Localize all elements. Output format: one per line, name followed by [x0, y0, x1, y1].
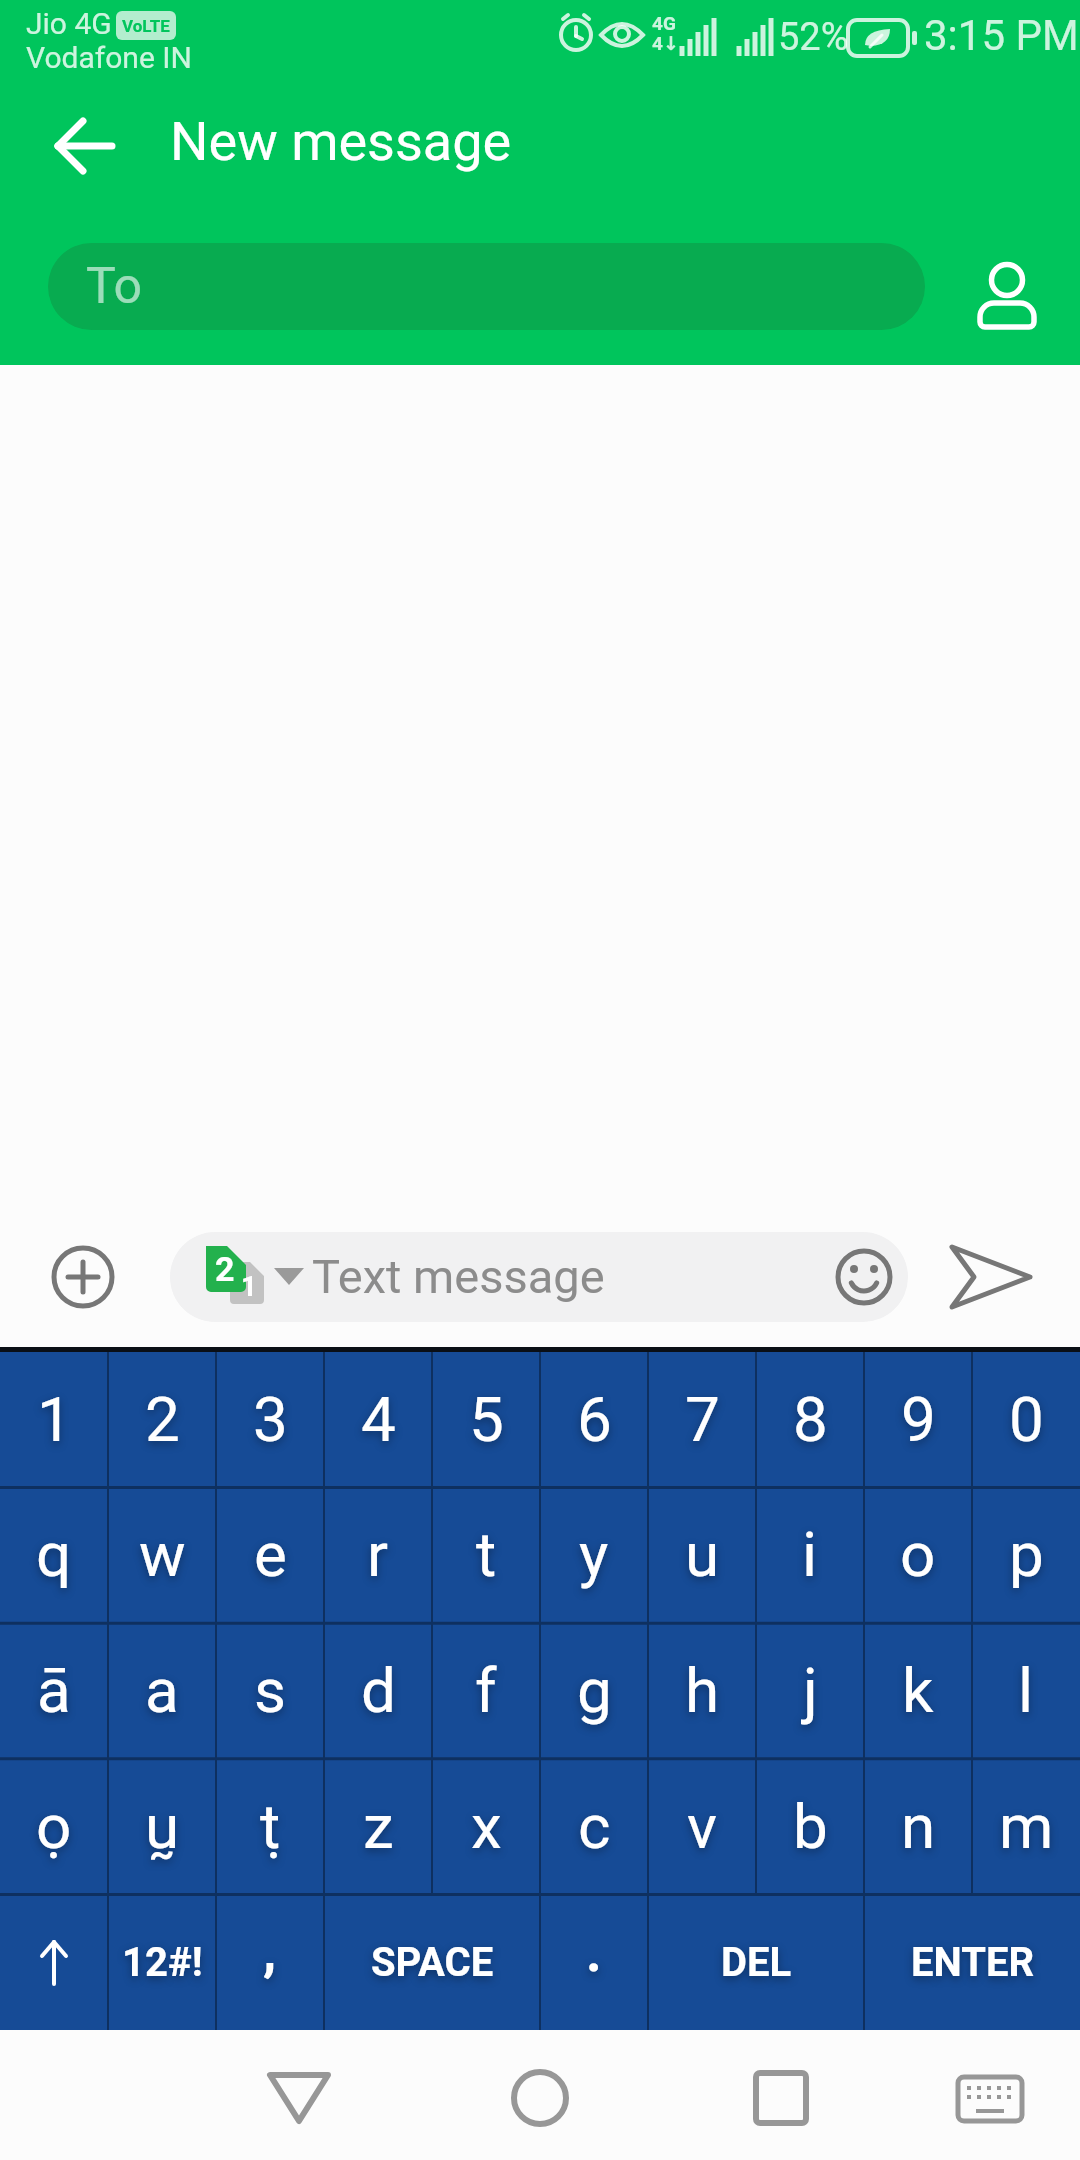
- button[interactable]: To: [48, 243, 925, 330]
- button[interactable]: 8: [756, 1352, 864, 1487]
- button[interactable]: [744, 2061, 818, 2135]
- staticText: 12#!: [122, 1939, 203, 1986]
- staticText: o: [900, 1518, 936, 1591]
- button[interactable]: b: [756, 1758, 864, 1894]
- button[interactable]: e: [216, 1487, 324, 1622]
- button[interactable]: 0: [972, 1352, 1080, 1487]
- staticText: To: [86, 257, 142, 316]
- staticText: Text message: [312, 1249, 605, 1304]
- button[interactable]: 6: [540, 1352, 648, 1487]
- staticText: ,: [263, 1919, 277, 1982]
- button[interactable]: [940, 1236, 1044, 1318]
- staticText: p: [1009, 1518, 1044, 1591]
- button[interactable]: ā: [0, 1622, 108, 1758]
- button[interactable]: SPACE: [324, 1894, 540, 2030]
- staticText: e: [254, 1518, 287, 1591]
- button[interactable]: r: [324, 1487, 432, 1622]
- button[interactable]: [0, 1894, 108, 2030]
- staticText: 0: [1009, 1383, 1044, 1456]
- button[interactable]: y: [540, 1487, 648, 1622]
- button[interactable]: a: [108, 1622, 216, 1758]
- button[interactable]: g: [540, 1622, 648, 1758]
- button[interactable]: n: [864, 1758, 972, 1894]
- staticText: ṵ: [145, 1790, 180, 1863]
- staticText: v: [687, 1790, 718, 1863]
- staticText: l: [1018, 1654, 1034, 1727]
- button[interactable]: t: [432, 1487, 540, 1622]
- button[interactable]: 5: [432, 1352, 540, 1487]
- button[interactable]: 2: [108, 1352, 216, 1487]
- staticText: ṭ: [260, 1790, 281, 1863]
- staticText: h: [685, 1654, 720, 1727]
- staticText: g: [577, 1654, 612, 1727]
- button[interactable]: j: [756, 1622, 864, 1758]
- staticText: 1: [37, 1383, 72, 1456]
- button[interactable]: [262, 2061, 336, 2135]
- button[interactable]: v: [648, 1758, 756, 1894]
- button[interactable]: m: [972, 1758, 1080, 1894]
- button[interactable]: 2: [170, 1232, 908, 1322]
- staticText: a: [145, 1654, 179, 1727]
- button[interactable]: [952, 2061, 1028, 2135]
- staticText: z: [363, 1790, 394, 1863]
- button[interactable]: c: [540, 1758, 648, 1894]
- button[interactable]: ṭ: [216, 1758, 324, 1894]
- button[interactable]: [968, 245, 1048, 329]
- staticText: b: [793, 1790, 828, 1863]
- button[interactable]: f: [432, 1622, 540, 1758]
- staticText: c: [578, 1790, 611, 1863]
- staticText: m: [999, 1790, 1054, 1863]
- staticText: Vodafone IN: [26, 40, 192, 75]
- button[interactable]: 7: [648, 1352, 756, 1487]
- button[interactable]: 1: [0, 1352, 108, 1487]
- button[interactable]: 9: [864, 1352, 972, 1487]
- button[interactable]: w: [108, 1487, 216, 1622]
- staticText: ENTER: [911, 1939, 1034, 1986]
- staticText: 52%: [778, 15, 849, 60]
- button[interactable]: l: [972, 1622, 1080, 1758]
- staticText: 4↓: [652, 32, 679, 54]
- button[interactable]: q: [0, 1487, 108, 1622]
- button[interactable]: s: [216, 1622, 324, 1758]
- button[interactable]: DEL: [648, 1894, 864, 2030]
- button[interactable]: k: [864, 1622, 972, 1758]
- button[interactable]: ṵ: [108, 1758, 216, 1894]
- staticText: y: [579, 1518, 609, 1591]
- staticText: VoLTE: [122, 16, 170, 36]
- staticText: k: [902, 1654, 934, 1727]
- staticText: 2: [145, 1383, 180, 1456]
- staticText: 7: [685, 1383, 720, 1456]
- staticText: 3:15 PM: [924, 11, 1079, 60]
- button[interactable]: h: [648, 1622, 756, 1758]
- staticText: q: [36, 1518, 72, 1591]
- button[interactable]: ọ: [0, 1758, 108, 1894]
- button[interactable]: 4: [324, 1352, 432, 1487]
- staticText: n: [901, 1790, 936, 1863]
- staticText: x: [471, 1790, 502, 1863]
- staticText: 9: [901, 1383, 936, 1456]
- staticText: s: [254, 1654, 286, 1727]
- button[interactable]: ENTER: [864, 1894, 1080, 2030]
- staticText: 6: [577, 1383, 612, 1456]
- staticText: 4G: [652, 12, 676, 34]
- button[interactable]: o: [864, 1487, 972, 1622]
- button[interactable]: .: [540, 1894, 648, 2030]
- button[interactable]: u: [648, 1487, 756, 1622]
- button[interactable]: p: [972, 1487, 1080, 1622]
- staticText: SPACE: [371, 1939, 494, 1986]
- staticText: 1: [241, 1270, 258, 1303]
- button[interactable]: 12#!: [108, 1894, 216, 2030]
- button[interactable]: x: [432, 1758, 540, 1894]
- button[interactable]: i: [756, 1487, 864, 1622]
- staticText: f: [475, 1654, 497, 1727]
- button[interactable]: [42, 1236, 124, 1318]
- button[interactable]: [503, 2061, 577, 2135]
- button[interactable]: [40, 110, 130, 182]
- staticText: t: [476, 1518, 497, 1591]
- button[interactable]: ,: [216, 1894, 324, 2030]
- staticText: r: [367, 1518, 389, 1591]
- button[interactable]: z: [324, 1758, 432, 1894]
- button[interactable]: 3: [216, 1352, 324, 1487]
- staticText: ā: [37, 1654, 71, 1727]
- button[interactable]: d: [324, 1622, 432, 1758]
